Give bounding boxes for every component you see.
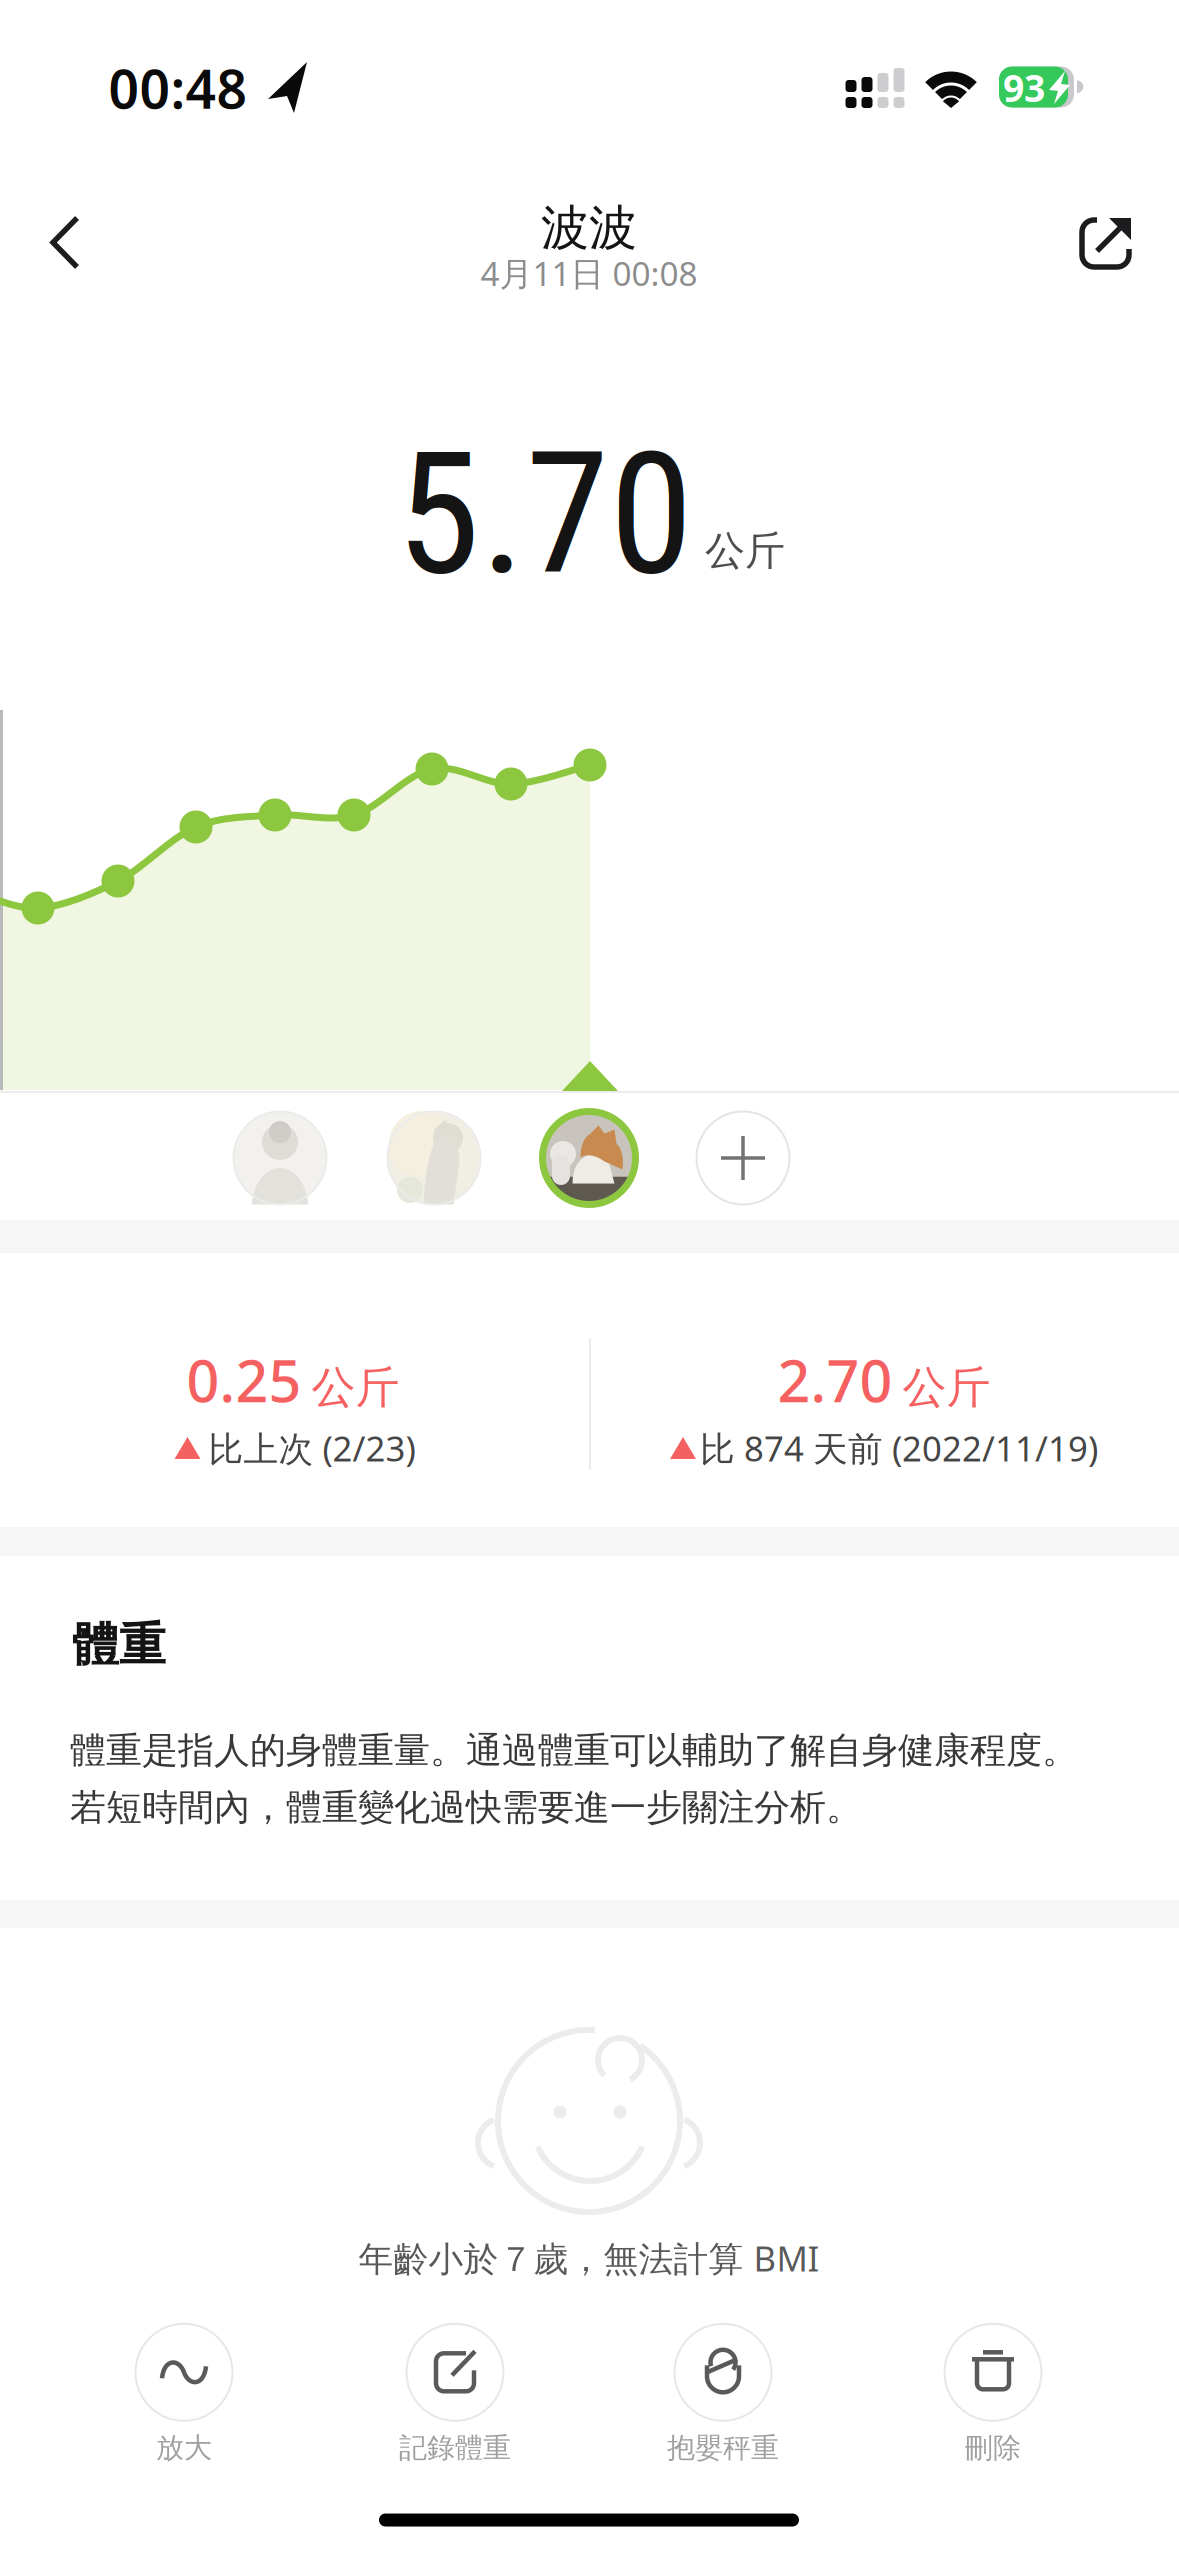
staticText: 2.70: [777, 1342, 892, 1418]
staticText: 刪除: [965, 2431, 1021, 2465]
staticText: 抱嬰秤重: [667, 2431, 779, 2465]
staticText: 00:48: [108, 53, 247, 123]
staticText: 0.25: [186, 1342, 301, 1418]
staticText: 比 874 天前 (2022/11/19): [700, 1425, 1098, 1471]
staticText: 放大: [156, 2431, 212, 2465]
button[interactable]: Member 2: [387, 1111, 480, 1204]
staticText: 93: [1003, 63, 1045, 112]
staticText: 公斤: [311, 1361, 399, 1415]
button[interactable]: 刪除: [944, 2324, 1041, 2465]
staticText: 公斤: [705, 526, 785, 575]
button[interactable]: 記錄體重: [399, 2324, 511, 2465]
button[interactable]: 抱嬰秤重: [667, 2324, 779, 2465]
staticText: 年齡小於７歲，無法計算 BMI: [358, 2235, 819, 2281]
staticText: 公斤: [902, 1361, 990, 1415]
button[interactable]: Add member: [696, 1111, 789, 1204]
staticText: 記錄體重: [399, 2431, 511, 2465]
button[interactable]: Back: [21, 198, 109, 286]
staticText: 體重: [72, 1616, 166, 1674]
button[interactable]: Share: [1062, 198, 1150, 286]
staticText: 5.70: [396, 415, 693, 613]
staticText: 4月11日 00:08: [480, 251, 697, 295]
staticText: 比上次 (2/23): [208, 1425, 415, 1471]
staticText: 體重是指人的身體重量。通過體重可以輔助了解自身健康程度。 若短時間內，體重變化過…: [70, 1728, 1078, 1830]
button[interactable]: Member 1: [233, 1111, 326, 1204]
button[interactable]: 波波: [542, 1111, 635, 1204]
button[interactable]: 放大: [135, 2324, 232, 2465]
staticText: 波波: [541, 198, 637, 257]
